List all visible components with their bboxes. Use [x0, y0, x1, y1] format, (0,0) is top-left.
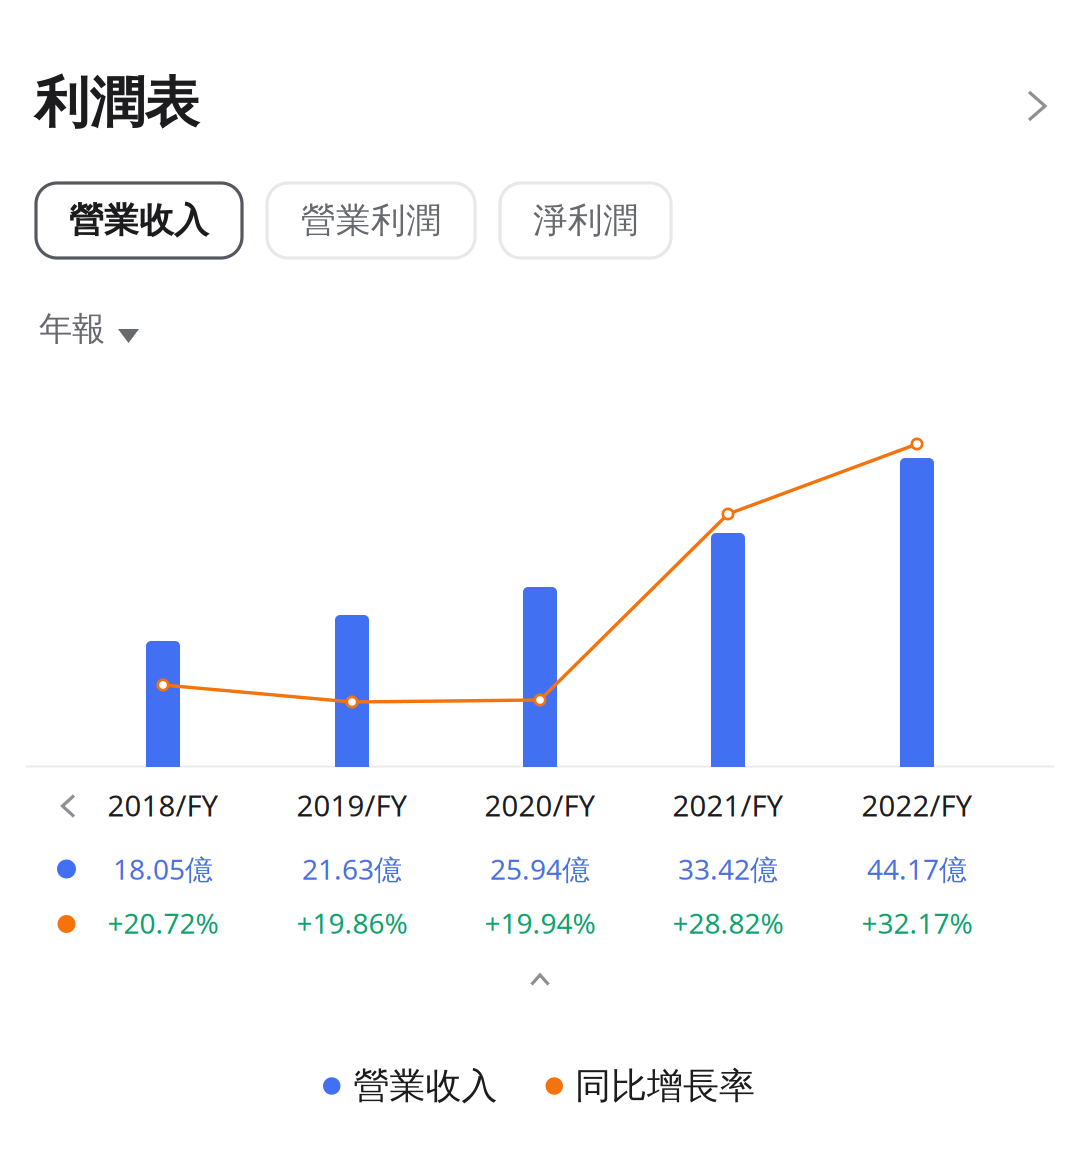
staticText: 18.05億 — [113, 850, 213, 888]
staticText: 利潤表 — [34, 69, 199, 136]
staticText: 33.42億 — [678, 850, 778, 888]
staticText: +19.94% — [484, 904, 595, 942]
staticText: +20.72% — [107, 904, 218, 942]
button[interactable]: 營業利潤 — [267, 183, 475, 258]
staticText: 2022/FY — [861, 785, 972, 824]
staticText: 2019/FY — [296, 785, 407, 824]
button[interactable]: Collapse — [495, 949, 585, 1009]
staticText: +28.82% — [672, 904, 783, 942]
staticText: 淨利潤 — [533, 199, 638, 242]
staticText: 營業收入 — [69, 199, 209, 242]
staticText: 2018/FY — [107, 785, 218, 824]
staticText: 25.94億 — [490, 850, 590, 888]
staticText: +32.17% — [861, 904, 972, 942]
button[interactable]: 年報 — [37, 289, 157, 369]
button[interactable]: Previous years — [38, 776, 98, 836]
button[interactable]: 利潤表 — [0, 46, 1080, 166]
staticText: 營業收入 — [353, 1064, 497, 1108]
button[interactable]: 營業收入 — [36, 183, 242, 258]
staticText: 21.63億 — [302, 850, 402, 888]
button[interactable]: 淨利潤 — [500, 183, 671, 258]
staticText: +19.86% — [296, 904, 407, 942]
staticText: 2021/FY — [672, 785, 783, 824]
staticText: 2020/FY — [484, 785, 595, 824]
staticText: 44.17億 — [867, 850, 967, 888]
staticText: 同比增長率 — [575, 1064, 755, 1108]
staticText: 營業利潤 — [301, 199, 441, 242]
staticText: 年報 — [39, 308, 105, 349]
